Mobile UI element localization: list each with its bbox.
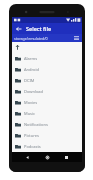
button[interactable]: Movies: [12, 97, 82, 108]
staticText: Android: [24, 67, 39, 72]
staticText: storage/emulated/0: [14, 36, 72, 41]
staticText: Movies: [24, 100, 38, 105]
staticText: Alarms: [24, 56, 38, 61]
button[interactable]: Download: [12, 86, 82, 97]
staticText: Select file: [26, 25, 52, 32]
staticText: Notifications: [24, 122, 48, 127]
button[interactable]: Home: [43, 153, 52, 162]
button[interactable]: Parent directory: [12, 42, 82, 53]
button[interactable]: Android: [12, 64, 82, 75]
staticText: Pictures: [24, 133, 40, 138]
button[interactable]: Recent apps: [62, 153, 71, 162]
button[interactable]: Menu: [72, 34, 80, 42]
button[interactable]: Back: [23, 153, 32, 162]
staticText: Podcasts: [24, 144, 41, 149]
button[interactable]: Podcasts: [12, 141, 82, 152]
staticText: Download: [24, 89, 44, 94]
button[interactable]: Back: [14, 24, 24, 34]
button[interactable]: Notifications: [12, 119, 82, 130]
button[interactable]: Pictures: [12, 130, 82, 141]
button[interactable]: DCIM: [12, 75, 82, 86]
staticText: DCIM: [24, 78, 35, 83]
button[interactable]: storage/emulated/0: [12, 34, 82, 42]
button[interactable]: Alarms: [12, 53, 82, 64]
staticText: Music: [24, 111, 35, 116]
button[interactable]: Music: [12, 108, 82, 119]
